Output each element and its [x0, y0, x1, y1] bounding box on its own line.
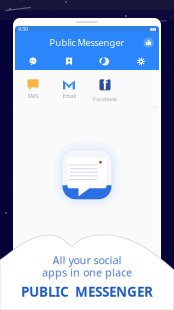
staticText: SMS	[27, 92, 38, 99]
staticText: 9:30	[18, 25, 28, 33]
button[interactable]: Night mode	[87, 53, 123, 70]
button[interactable]: SMS	[15, 79, 51, 99]
button[interactable]: Saved	[51, 53, 87, 70]
staticText: PUBLIC MESSENGER	[21, 283, 153, 300]
staticText: Email	[62, 92, 75, 99]
button[interactable]: Email	[51, 79, 87, 99]
button[interactable]: f	[87, 76, 123, 103]
staticText: Facebook	[93, 96, 117, 103]
button[interactable]: Like	[141, 35, 156, 50]
staticText: ▮▮▮	[150, 27, 156, 31]
staticText: f	[102, 75, 107, 93]
button[interactable]: Chats	[15, 53, 51, 70]
staticText: Public Messenger	[49, 36, 124, 49]
button[interactable]: Settings	[123, 53, 159, 70]
staticText: All your social	[52, 253, 121, 267]
staticText: apps in one place	[42, 265, 132, 279]
